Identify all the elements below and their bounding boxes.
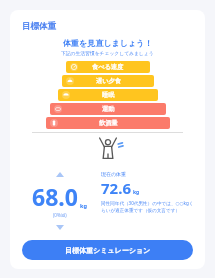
- staticText: 68.0: [32, 181, 78, 212]
- staticText: 食べる速度: [92, 63, 124, 71]
- button[interactable]: 体重を減らす: [53, 220, 67, 234]
- button[interactable]: 飲酒量: [46, 117, 170, 129]
- staticText: kg: [80, 202, 87, 209]
- staticText: 同性同年代（30代男性）の中では、○○kgくらいが適正体重です（仮の文言です）: [101, 200, 197, 213]
- button[interactable]: 体重を増やす: [53, 167, 67, 181]
- staticText: 体重を見直しましょう！: [63, 38, 153, 48]
- button[interactable]: 睡眠: [58, 89, 158, 101]
- staticText: 飲酒量: [99, 119, 118, 127]
- staticText: 目標体重シミュレーション: [65, 246, 151, 255]
- staticText: 目標体重: [22, 21, 56, 32]
- staticText: 遅い夕食: [96, 77, 121, 85]
- staticText: (0%減): [53, 212, 67, 218]
- staticText: 72.6: [101, 178, 131, 198]
- staticText: kg: [133, 189, 140, 196]
- button[interactable]: 目標体重シミュレーション: [22, 240, 193, 260]
- staticText: 睡眠: [102, 91, 115, 99]
- staticText: 下記の生活習慣をチェックしてみましょう: [61, 50, 154, 56]
- button[interactable]: 遅い夕食: [62, 75, 154, 87]
- staticText: 現在の体重: [101, 171, 127, 177]
- button[interactable]: 食べる速度: [66, 61, 150, 73]
- staticText: 運動: [102, 105, 115, 113]
- button[interactable]: 運動: [50, 103, 166, 115]
